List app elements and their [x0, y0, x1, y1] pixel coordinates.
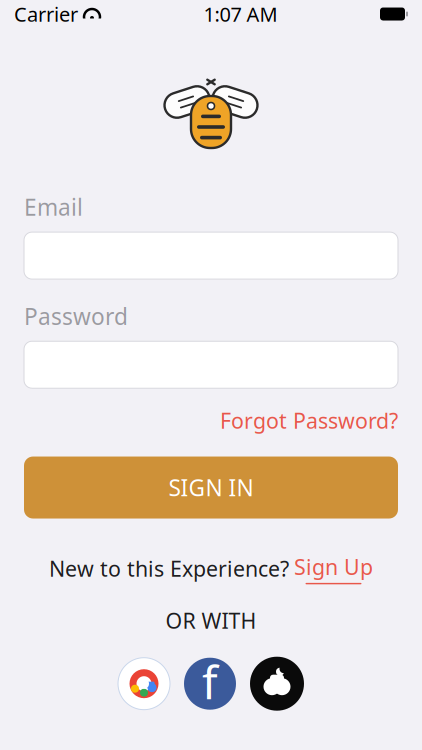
staticText: SIGN IN: [168, 472, 253, 503]
staticText: f: [202, 652, 218, 712]
staticText: Password: [24, 301, 128, 331]
staticText: New to this Experience?: [49, 554, 289, 583]
staticText: Forgot Password?: [220, 406, 398, 434]
button[interactable]: SIGN IN: [24, 456, 398, 518]
staticText: Email: [24, 192, 83, 222]
staticText: Carrier: [14, 1, 78, 27]
button[interactable]: Forgot Password?: [220, 406, 398, 434]
staticText: Sign Up: [294, 552, 373, 581]
button[interactable]: Sign in with Apple: [250, 657, 304, 711]
staticText: OR WITH: [165, 606, 256, 635]
staticText: 1:07 AM: [203, 1, 277, 27]
button[interactable]: Sign Up: [294, 552, 373, 584]
button[interactable]: Sign in with Facebook: [184, 658, 236, 710]
button[interactable]: Sign in with Google: [118, 658, 170, 710]
